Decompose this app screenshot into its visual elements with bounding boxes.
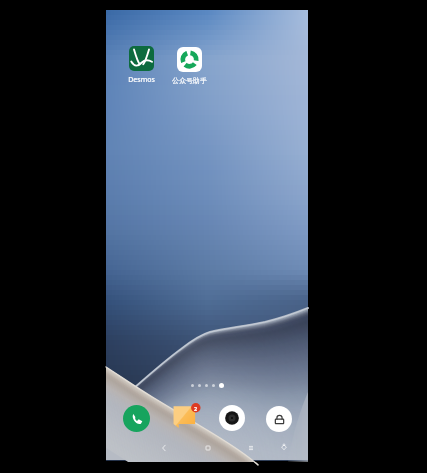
button[interactable]: Camera (219, 405, 245, 431)
button[interactable]: Recent apps (243, 440, 259, 456)
button[interactable]: 公众号助手 (165, 47, 213, 85)
button[interactable]: Lock (266, 406, 292, 432)
button[interactable]: Desmos (117, 46, 165, 85)
staticText: 公众号助手 (172, 76, 207, 85)
button[interactable]: Messages (173, 403, 200, 430)
staticText: Desmos (128, 75, 155, 85)
button[interactable]: Back (156, 440, 172, 456)
staticText: 2 (194, 405, 198, 412)
button[interactable]: Hide navigation bar (276, 439, 292, 455)
button[interactable]: Home (200, 440, 216, 456)
button[interactable]: Phone (123, 405, 150, 432)
